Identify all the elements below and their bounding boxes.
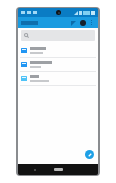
button[interactable]: More options bbox=[88, 19, 95, 26]
button[interactable] bbox=[18, 44, 98, 57]
button[interactable]: Home bbox=[52, 166, 64, 173]
button[interactable] bbox=[21, 21, 69, 25]
button[interactable] bbox=[18, 58, 98, 71]
button[interactable]: Account bbox=[78, 18, 87, 27]
button[interactable] bbox=[18, 72, 98, 85]
button[interactable]: Back bbox=[32, 167, 38, 173]
button[interactable]: Search bbox=[21, 30, 95, 41]
button[interactable]: Compose bbox=[85, 150, 94, 159]
button[interactable]: Flag bbox=[69, 19, 77, 27]
